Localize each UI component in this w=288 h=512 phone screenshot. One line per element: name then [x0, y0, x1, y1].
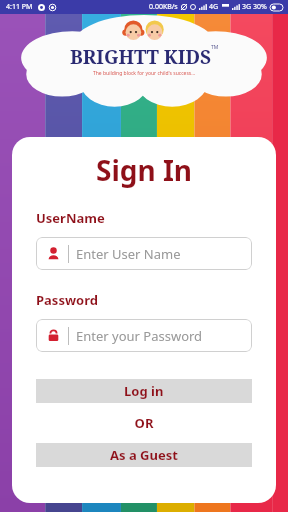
button[interactable]: Enter User Name [36, 237, 252, 270]
staticText: 3G 30% [242, 2, 267, 12]
staticText: Password [36, 291, 98, 309]
staticText: UserName [36, 209, 105, 227]
staticText: Sign In [36, 151, 252, 189]
button[interactable]: Log in [36, 379, 252, 403]
staticText: OR [36, 414, 252, 432]
staticText: 0.00KB/s [149, 2, 178, 12]
staticText: TM [211, 44, 219, 51]
staticText: The building block for your child's succ… [93, 70, 196, 77]
staticText: As a Guest [110, 446, 178, 464]
staticText: BRIGHTT KIDS [70, 44, 211, 70]
staticText: Log in [124, 382, 164, 400]
button[interactable]: As a Guest [36, 443, 252, 467]
staticText: 4:11 PM [6, 2, 33, 12]
staticText: 4G [209, 2, 219, 12]
staticText: Enter User Name [76, 245, 181, 263]
staticText: Enter your Password [76, 327, 203, 345]
button[interactable]: Enter your Password [36, 319, 252, 352]
